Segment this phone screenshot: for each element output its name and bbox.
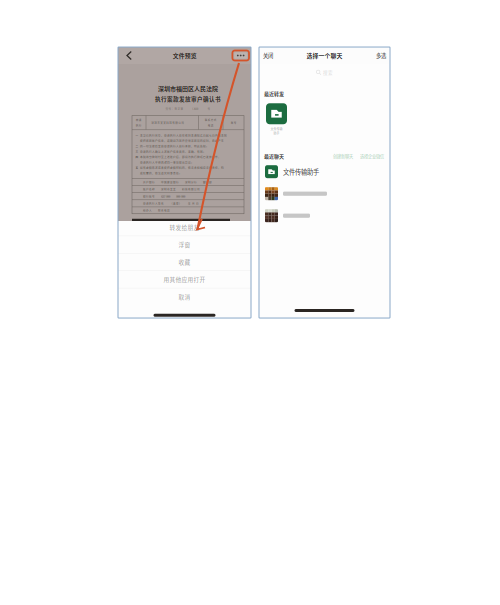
staticText: 账户名称 [143, 187, 155, 191]
button[interactable]: 文件传输 [263, 97, 290, 135]
staticText: 文件预览 [173, 51, 197, 60]
staticText: 银行账号 [143, 194, 155, 198]
button[interactable]: Back [121, 46, 137, 64]
staticText: 深圳分行 [185, 180, 197, 184]
staticText: 二 [135, 144, 138, 148]
button[interactable]: 收藏 [118, 254, 251, 271]
staticText: 助手 [273, 131, 279, 135]
staticText: 转发给朋友 [169, 223, 199, 231]
staticText: 创建新聊天 [333, 153, 353, 159]
staticText: 取消 [178, 293, 190, 301]
staticText: 深圳市某某科技有限公司 [151, 121, 184, 124]
staticText: 搜索 [323, 69, 333, 76]
staticText: 成犯罪的，依法追究刑事责任。 [140, 171, 182, 175]
staticText: 文件传输助手 [283, 167, 319, 176]
staticText: 最近转发 [264, 90, 284, 97]
staticText: 关闭 [263, 52, 273, 59]
staticText: 三 [135, 150, 138, 153]
staticText: 四 [135, 155, 138, 159]
button[interactable]: 搜索 [259, 64, 390, 81]
button[interactable]: Chat [259, 183, 390, 205]
button[interactable]: 创建新聊天 [333, 153, 353, 159]
staticText: 提供收款账户信息，逾期视为放弃受领该款项的权利，由此产生 [140, 139, 224, 143]
staticText: 用其他应用打开 [163, 275, 205, 283]
button[interactable]: 多选 [373, 49, 389, 62]
staticText: 0000 0000 [176, 194, 185, 198]
button[interactable]: 选择企业微信 [360, 153, 384, 159]
staticText: 案号：执字第 [165, 107, 183, 111]
staticText: 中国建设银行 [161, 180, 179, 184]
button[interactable]: 浮窗 [118, 236, 251, 254]
staticText: 年 月 日 [188, 201, 199, 205]
staticText: （盖章） [170, 201, 182, 205]
staticText: 账号 [231, 121, 237, 124]
staticText: 电话 [208, 123, 214, 127]
button[interactable]: 关闭 [260, 49, 276, 62]
staticText: 一 [135, 133, 138, 137]
staticText: 经办人 [143, 209, 152, 212]
staticText: 浮窗 [178, 240, 190, 249]
button[interactable]: More options [232, 50, 249, 60]
staticText: 深圳市福田区人民法院 [158, 84, 218, 93]
staticText: 6217 0000 [161, 194, 170, 198]
staticText: 科技有限公司 [182, 187, 200, 191]
button[interactable]: 用其他应用打开 [118, 271, 251, 288]
staticText: 文件传输 [270, 127, 282, 131]
staticText: 营业部 [203, 180, 212, 184]
staticText: 多选 [376, 52, 386, 59]
staticText: 申请执行人确认上述账户信息真实、准确、有效。 [140, 149, 206, 153]
staticText: 五 [135, 166, 138, 170]
staticText: 申请执行人签名 [143, 201, 164, 205]
staticText: 联系电话 [158, 209, 170, 212]
staticText: 本案已执行完毕，申请执行人应在收到本通知之日起七日内向本院 [140, 133, 227, 137]
staticText: 联系方式 [205, 118, 217, 122]
staticText: （2023） [190, 107, 200, 111]
staticText: 的一切法律后果由申请执行人自行承担，特此告知。 [140, 144, 209, 148]
staticText: 选择一个聊天 [306, 51, 342, 60]
staticText: 申请 [136, 118, 142, 122]
staticText: 收藏 [178, 258, 190, 266]
staticText: 号 [207, 107, 210, 111]
staticText: 如有虚假陈述或者提供虚假材料的，依法承担相应法律责任，构 [140, 166, 224, 170]
staticText: 选择企业微信 [360, 153, 384, 159]
button[interactable]: 取消 [118, 288, 251, 306]
staticText: 开户银行 [143, 180, 155, 184]
staticText: 本院将案款划付至上述账户后，即视为执行款项已发放完毕， [140, 155, 221, 159]
staticText: 深圳市某某 [161, 187, 176, 191]
button[interactable]: Chat [259, 205, 390, 227]
staticText: 执行 [136, 123, 142, 127]
staticText: 申请执行人不得再就同一事项提出异议。 [140, 160, 194, 164]
staticText: 执行案款发放审户确认书 [155, 95, 221, 103]
button[interactable]: 文件传输助手 [259, 161, 390, 183]
staticText: 最近聊天 [264, 152, 284, 160]
button[interactable]: 转发给朋友 [118, 219, 251, 236]
